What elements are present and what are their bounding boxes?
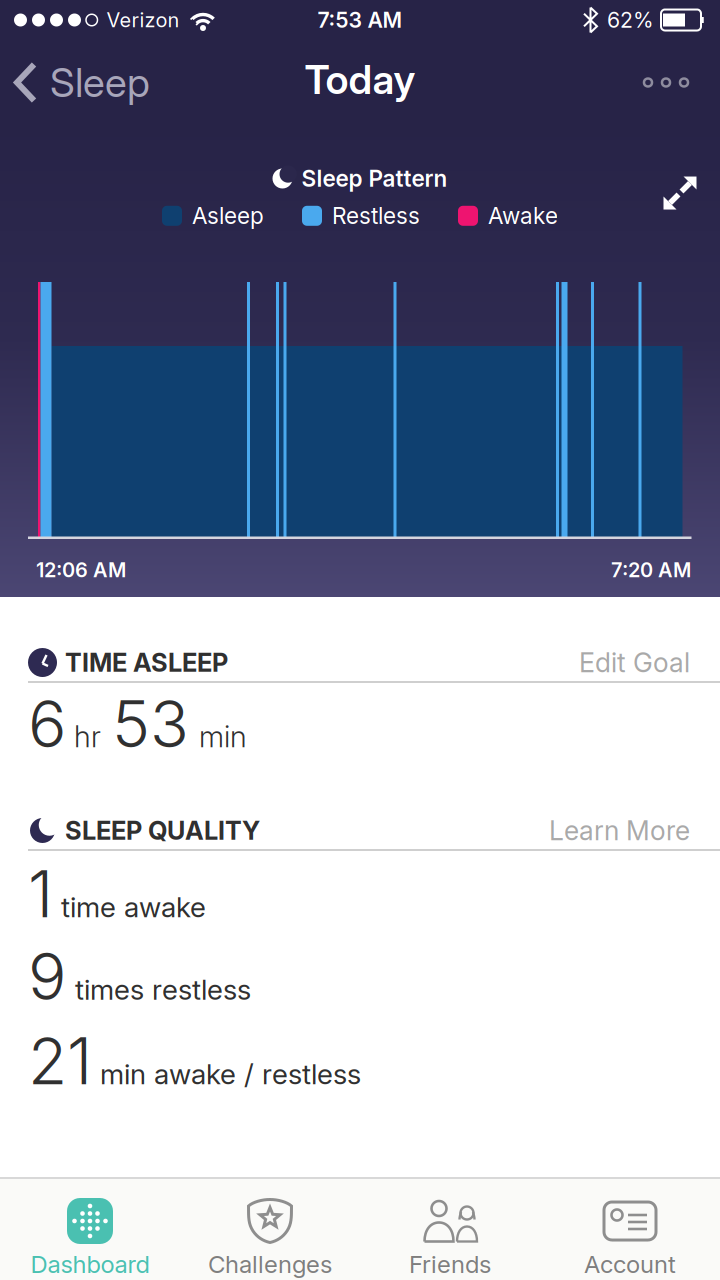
button[interactable]: Dashboard — [0, 1198, 180, 1278]
staticText: 12:06 AM — [36, 558, 126, 582]
staticText: 7:20 AM — [611, 558, 691, 582]
staticText: min — [199, 719, 247, 754]
staticText: 7:53 AM — [317, 7, 402, 33]
staticText: SLEEP QUALITY — [65, 816, 260, 845]
staticText: Verizon — [106, 8, 179, 32]
button[interactable]: Challenges — [180, 1198, 360, 1278]
button[interactable]: Expand chart — [663, 176, 697, 210]
staticText: 9 — [28, 939, 67, 1014]
staticText: 53 — [112, 686, 189, 762]
staticText: 1 — [28, 856, 53, 932]
staticText: Edit Goal — [579, 647, 690, 678]
staticText: Learn More — [549, 815, 690, 846]
staticText: time awake — [61, 891, 206, 924]
staticText: Friends — [409, 1250, 491, 1278]
staticText: Challenges — [208, 1250, 332, 1278]
staticText: 21 — [28, 1023, 92, 1099]
button[interactable]: Edit Goal — [579, 647, 690, 678]
staticText: Sleep Pattern — [301, 165, 447, 192]
button[interactable]: Learn More — [549, 815, 690, 846]
staticText: 62% — [607, 7, 654, 33]
staticText: Awake — [488, 202, 558, 229]
staticText: hr — [74, 719, 101, 754]
staticText: Restless — [332, 202, 420, 229]
button[interactable]: Friends — [360, 1198, 540, 1278]
staticText: Today — [304, 56, 415, 103]
button[interactable]: Account — [540, 1198, 720, 1278]
staticText: min awake / restless — [100, 1058, 361, 1091]
staticText: Dashboard — [30, 1250, 149, 1278]
staticText: times restless — [75, 973, 251, 1006]
button[interactable]: Sleep — [0, 59, 150, 106]
staticText: Asleep — [192, 202, 264, 229]
staticText: Sleep — [50, 59, 150, 106]
button[interactable]: More — [644, 78, 720, 86]
staticText: Account — [584, 1250, 676, 1278]
staticText: TIME ASLEEP — [65, 648, 228, 677]
staticText: 6 — [28, 686, 67, 762]
